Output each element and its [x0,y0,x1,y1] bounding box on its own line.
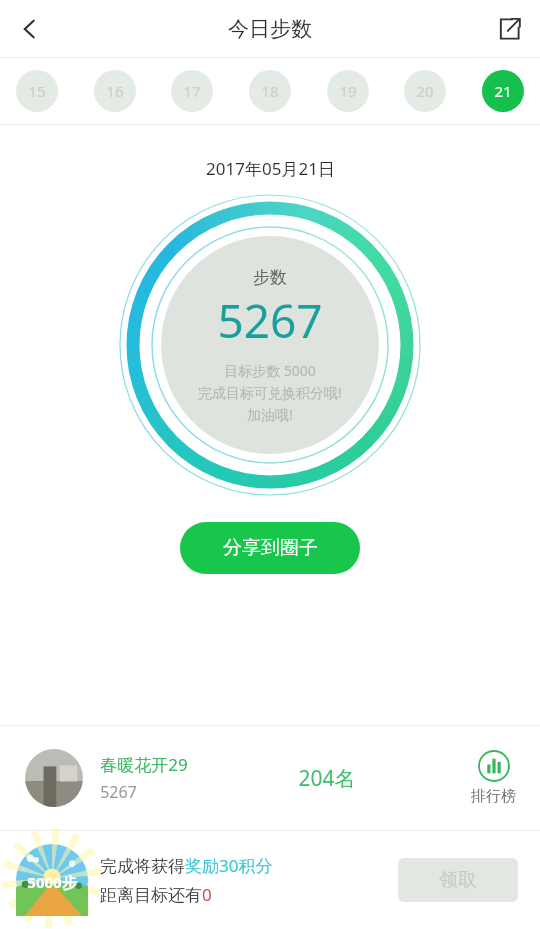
button[interactable]: Share [486,6,532,52]
staticText: 204名 [298,764,356,793]
button[interactable]: 春暖花开29 [0,726,540,830]
staticText: 领取 [439,868,477,892]
button[interactable]: 领取 [398,858,518,902]
staticText: 步数 [253,267,287,288]
staticText: 20 [416,81,434,101]
staticText: 16 [106,81,124,101]
staticText: 加油哦! [247,405,293,424]
staticText: 17 [183,81,201,101]
staticText: 距离目标还有0 [100,883,212,906]
staticText: 15 [28,81,46,101]
button[interactable]: 15 [16,70,58,112]
staticText: 19 [339,81,357,101]
staticText: 5267 [100,781,137,803]
button[interactable]: 17 [171,70,213,112]
staticText: 5000步 [27,872,77,892]
button[interactable]: 21 [482,70,524,112]
staticText: 完成将获得奖励30积分 [100,854,273,877]
staticText: 春暖花开29 [100,753,188,776]
button[interactable]: 分享到圈子 [180,522,360,574]
button[interactable]: 18 [249,70,291,112]
button[interactable]: 16 [94,70,136,112]
button[interactable]: Back [6,5,54,53]
button[interactable]: 20 [404,70,446,112]
staticText: 排行榜 [471,787,516,806]
staticText: 完成目标可兑换积分哦! [198,383,342,402]
staticText: 今日步数 [228,16,312,42]
staticText: 5267 [217,289,323,352]
staticText: 分享到圈子 [223,536,318,560]
staticText: 21 [494,81,512,101]
button[interactable]: 排行榜 [471,750,516,806]
staticText: 18 [261,81,279,101]
staticText: 目标步数 5000 [224,361,316,380]
button[interactable]: 19 [327,70,369,112]
staticText: 2017年05月21日 [206,157,335,180]
